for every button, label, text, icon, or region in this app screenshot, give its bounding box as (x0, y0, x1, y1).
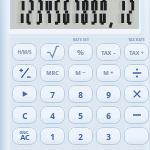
staticText: RATE SET (73, 37, 89, 41)
button[interactable]: Subtract (124, 106, 149, 124)
staticText: 5 (78, 110, 83, 121)
button[interactable]: Memory plus (96, 64, 121, 82)
button[interactable]: 3 (96, 127, 121, 145)
button[interactable]: Hours minutes seconds (12, 43, 37, 61)
button[interactable]: Divide (124, 64, 149, 82)
button[interactable]: 9 (96, 85, 121, 103)
staticText: % (77, 47, 84, 57)
staticText: 6 (106, 110, 111, 121)
staticText: 9 (106, 89, 111, 100)
staticText: 7 (50, 89, 55, 100)
button[interactable]: 1 (40, 127, 65, 145)
button[interactable]: All clear (12, 127, 37, 145)
staticText: MRC (46, 69, 59, 77)
button[interactable]: 7 (40, 85, 65, 103)
staticText: 1 (50, 131, 55, 142)
button[interactable]: Memory minus (68, 64, 93, 82)
button[interactable]: Percent (68, 43, 93, 61)
button[interactable]: Tax plus (124, 43, 149, 61)
staticText: H/M/S (17, 49, 32, 55)
button[interactable]: Square root (40, 43, 65, 61)
staticText: ON/C (19, 130, 29, 135)
button[interactable]: Tax minus (96, 43, 121, 61)
staticText: M + (103, 69, 114, 77)
staticText: C (22, 110, 28, 121)
button[interactable]: Sign change (12, 64, 37, 82)
button[interactable]: Clear (12, 106, 37, 124)
staticText: TAX − (101, 49, 116, 56)
button[interactable]: Memory recall clear (40, 64, 65, 82)
staticText: 2 (78, 131, 83, 142)
button[interactable]: 4 (40, 106, 65, 124)
button[interactable]: Right shift (12, 85, 37, 103)
button[interactable]: 2 (68, 127, 93, 145)
staticText: TAX + (129, 49, 144, 56)
staticText: 4 (50, 110, 55, 121)
staticText: AC (20, 132, 30, 142)
button[interactable]: 5 (68, 106, 93, 124)
button[interactable]: Multiply (124, 85, 149, 103)
button[interactable]: Equals (124, 127, 149, 145)
button[interactable]: 8 (68, 85, 93, 103)
staticText: 8 (78, 89, 83, 100)
staticText: TAX RATE (128, 37, 145, 41)
staticText: 3 (106, 131, 111, 142)
button[interactable]: 6 (96, 106, 121, 124)
staticText: M − (75, 69, 86, 77)
